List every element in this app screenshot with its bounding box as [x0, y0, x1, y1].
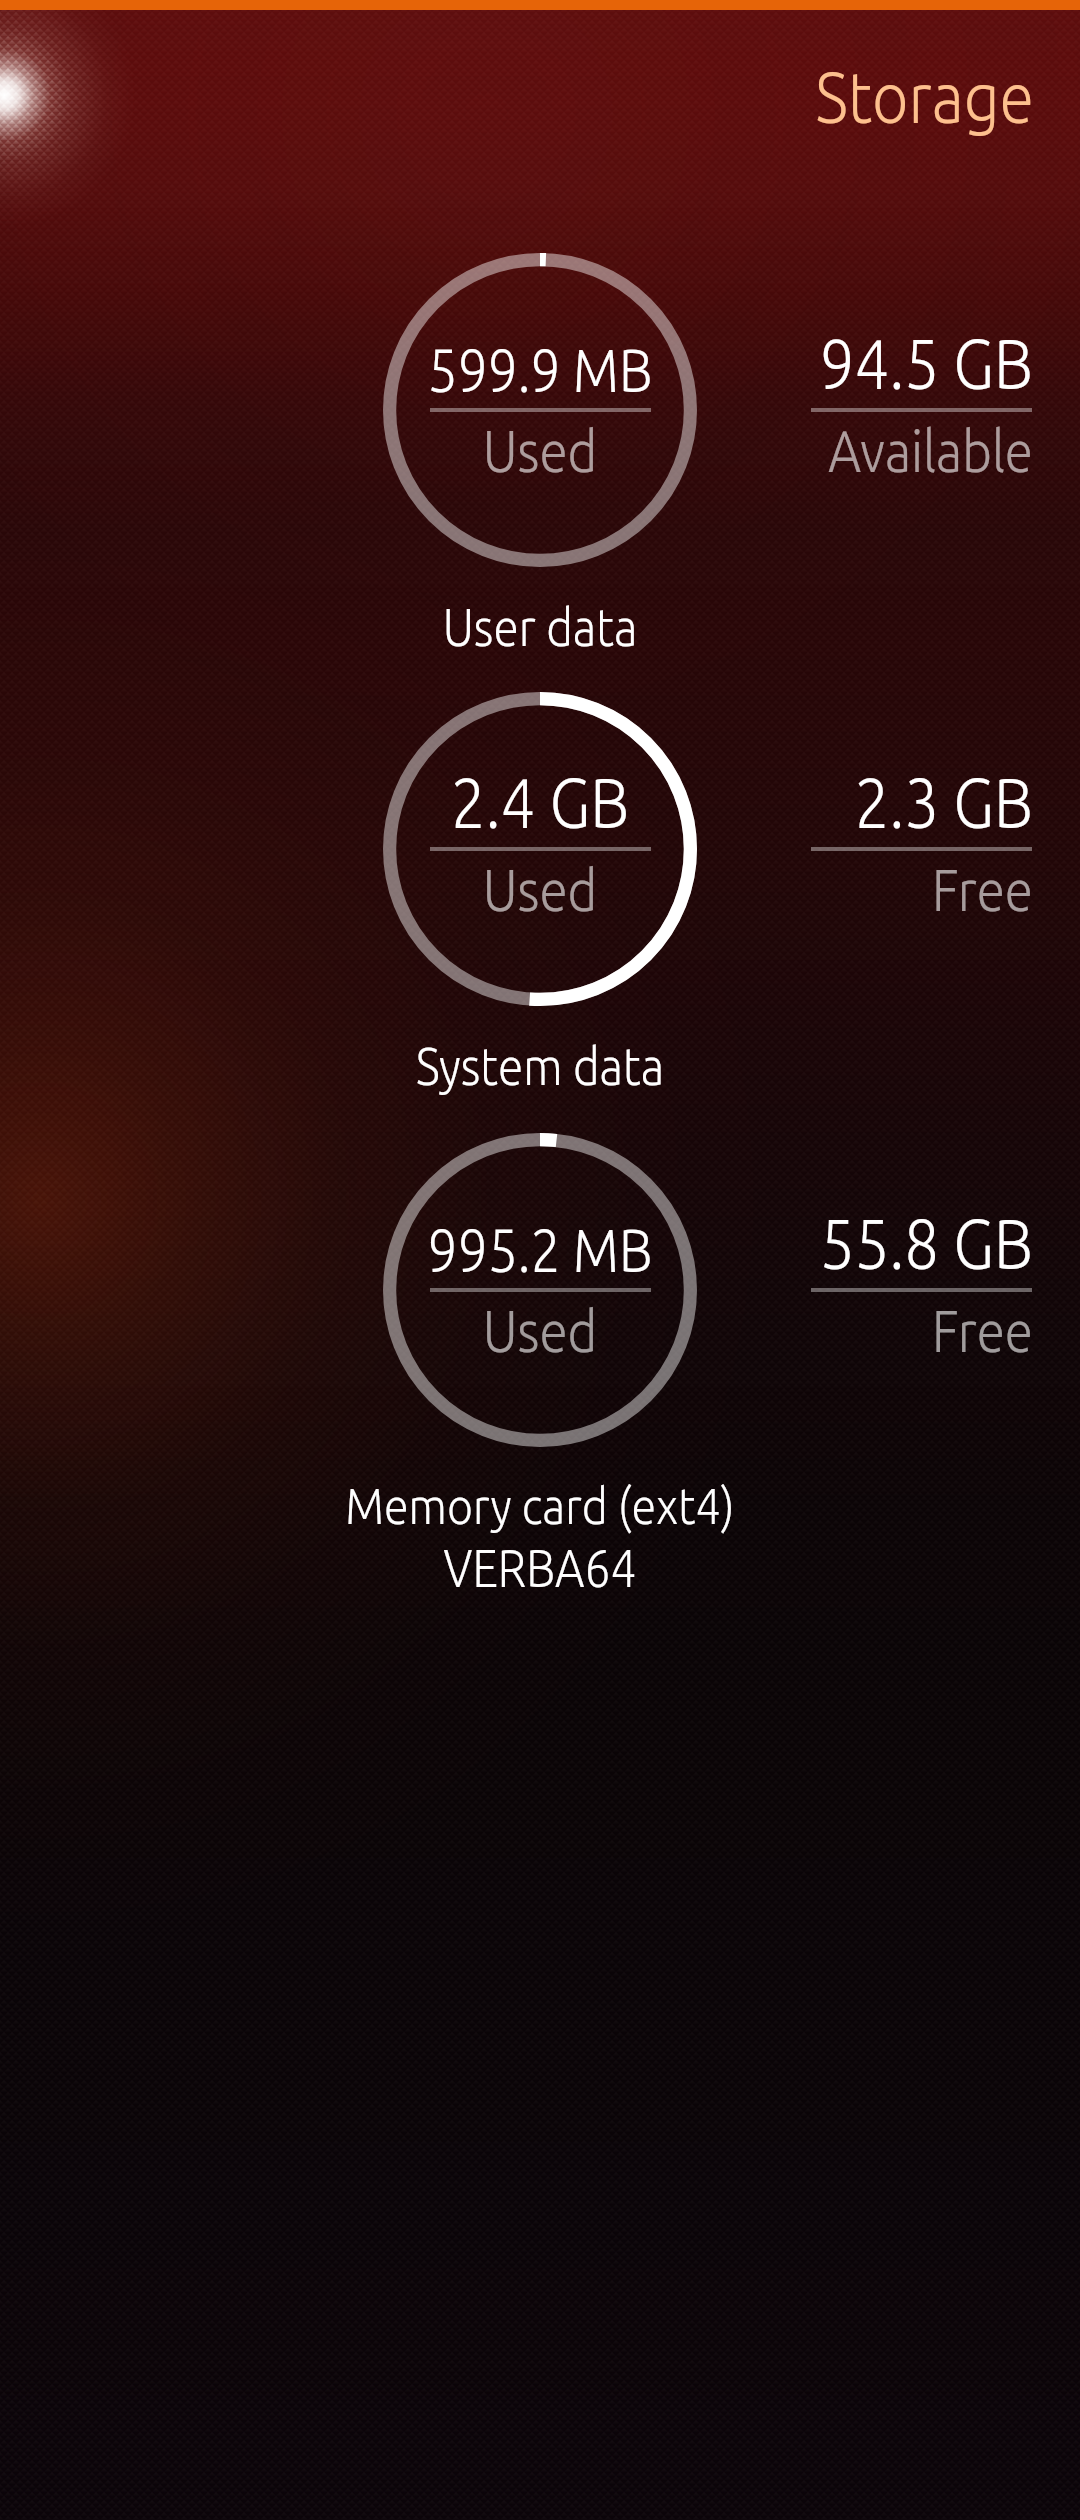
staticText: 599.9 MB	[398, 336, 682, 404]
staticText: Storage	[591, 57, 1034, 137]
staticText: Free	[767, 1298, 1033, 1363]
staticText: Available	[767, 418, 1033, 483]
button[interactable]: Memory card (ext4) VERBA64	[0, 1117, 1080, 1600]
staticText: User data	[186, 598, 894, 656]
staticText: Memory card (ext4)	[186, 1477, 894, 1534]
button[interactable]: User data	[0, 237, 1080, 659]
staticText: Used	[398, 418, 682, 483]
staticText: 94.5 GB	[767, 324, 1033, 402]
staticText: System data	[186, 1037, 894, 1095]
staticText: Used	[398, 1298, 682, 1363]
staticText: Used	[398, 857, 682, 922]
staticText: Free	[767, 857, 1033, 922]
staticText: 2.3 GB	[767, 763, 1033, 841]
button[interactable]: System data	[0, 676, 1080, 1098]
staticText: 2.4 GB	[398, 763, 682, 841]
staticText: 55.8 GB	[767, 1204, 1033, 1282]
staticText: VERBA64	[186, 1539, 894, 1597]
staticText: 995.2 MB	[398, 1216, 682, 1284]
